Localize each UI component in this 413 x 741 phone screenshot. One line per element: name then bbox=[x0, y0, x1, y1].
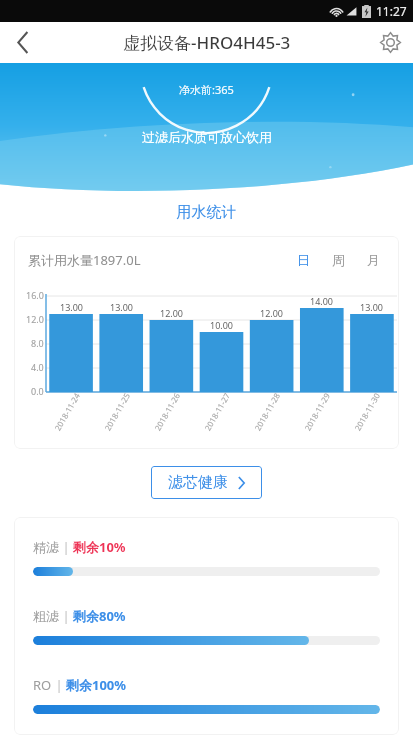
staticText: 虚拟设备-HRO4H45-3 bbox=[123, 31, 291, 54]
staticText: 剩余10% bbox=[73, 538, 126, 556]
button[interactable]: 日 bbox=[294, 249, 313, 271]
button[interactable]: Back bbox=[0, 22, 46, 63]
staticText: 10.00 bbox=[210, 319, 234, 331]
staticText: 12.0 bbox=[26, 313, 44, 325]
staticText: 用水统计 bbox=[0, 203, 413, 222]
staticText: 0.0 bbox=[31, 385, 44, 397]
staticText: 12.00 bbox=[160, 307, 184, 319]
staticText: 粗滤 bbox=[33, 608, 59, 624]
button[interactable]: 周 bbox=[329, 249, 348, 271]
staticText: 2018-11-30 bbox=[352, 391, 382, 432]
staticText: 2018-11-26 bbox=[152, 391, 182, 432]
button[interactable]: 滤芯健康 bbox=[151, 466, 262, 499]
staticText: 13.00 bbox=[60, 301, 84, 313]
staticText: 2018-11-29 bbox=[302, 391, 332, 432]
staticText: 剩余80% bbox=[73, 607, 126, 625]
staticText: 月 bbox=[367, 252, 380, 268]
staticText: 14.00 bbox=[310, 295, 334, 307]
staticText: 2018-11-25 bbox=[102, 391, 132, 432]
staticText: 11:27 bbox=[376, 3, 407, 19]
staticText: 13.00 bbox=[360, 301, 384, 313]
staticText: 累计用水量1897.0L bbox=[28, 251, 141, 269]
staticText: 16.0 bbox=[26, 289, 44, 301]
staticText: 精滤 bbox=[33, 539, 59, 555]
staticText: 13.00 bbox=[110, 301, 134, 313]
staticText: 日 bbox=[297, 252, 310, 268]
staticText: | bbox=[52, 676, 66, 694]
staticText: 净水前:365 bbox=[179, 82, 234, 97]
staticText: | bbox=[59, 538, 73, 556]
staticText: 滤芯健康 bbox=[168, 473, 228, 492]
button[interactable]: 月 bbox=[364, 249, 383, 271]
staticText: 过滤后水质可放心饮用 bbox=[142, 129, 272, 145]
staticText: 2018-11-28 bbox=[252, 391, 282, 432]
staticText: 8.0 bbox=[31, 337, 44, 349]
staticText: RO bbox=[33, 676, 52, 694]
staticText: 周 bbox=[332, 252, 345, 268]
staticText: 2018-11-27 bbox=[202, 391, 232, 432]
staticText: 剩余100% bbox=[66, 676, 127, 694]
staticText: | bbox=[59, 607, 73, 625]
staticText: 12.00 bbox=[260, 307, 284, 319]
button[interactable]: Settings bbox=[367, 22, 413, 63]
staticText: 2018-11-24 bbox=[52, 391, 82, 432]
staticText: 4.0 bbox=[31, 361, 44, 373]
